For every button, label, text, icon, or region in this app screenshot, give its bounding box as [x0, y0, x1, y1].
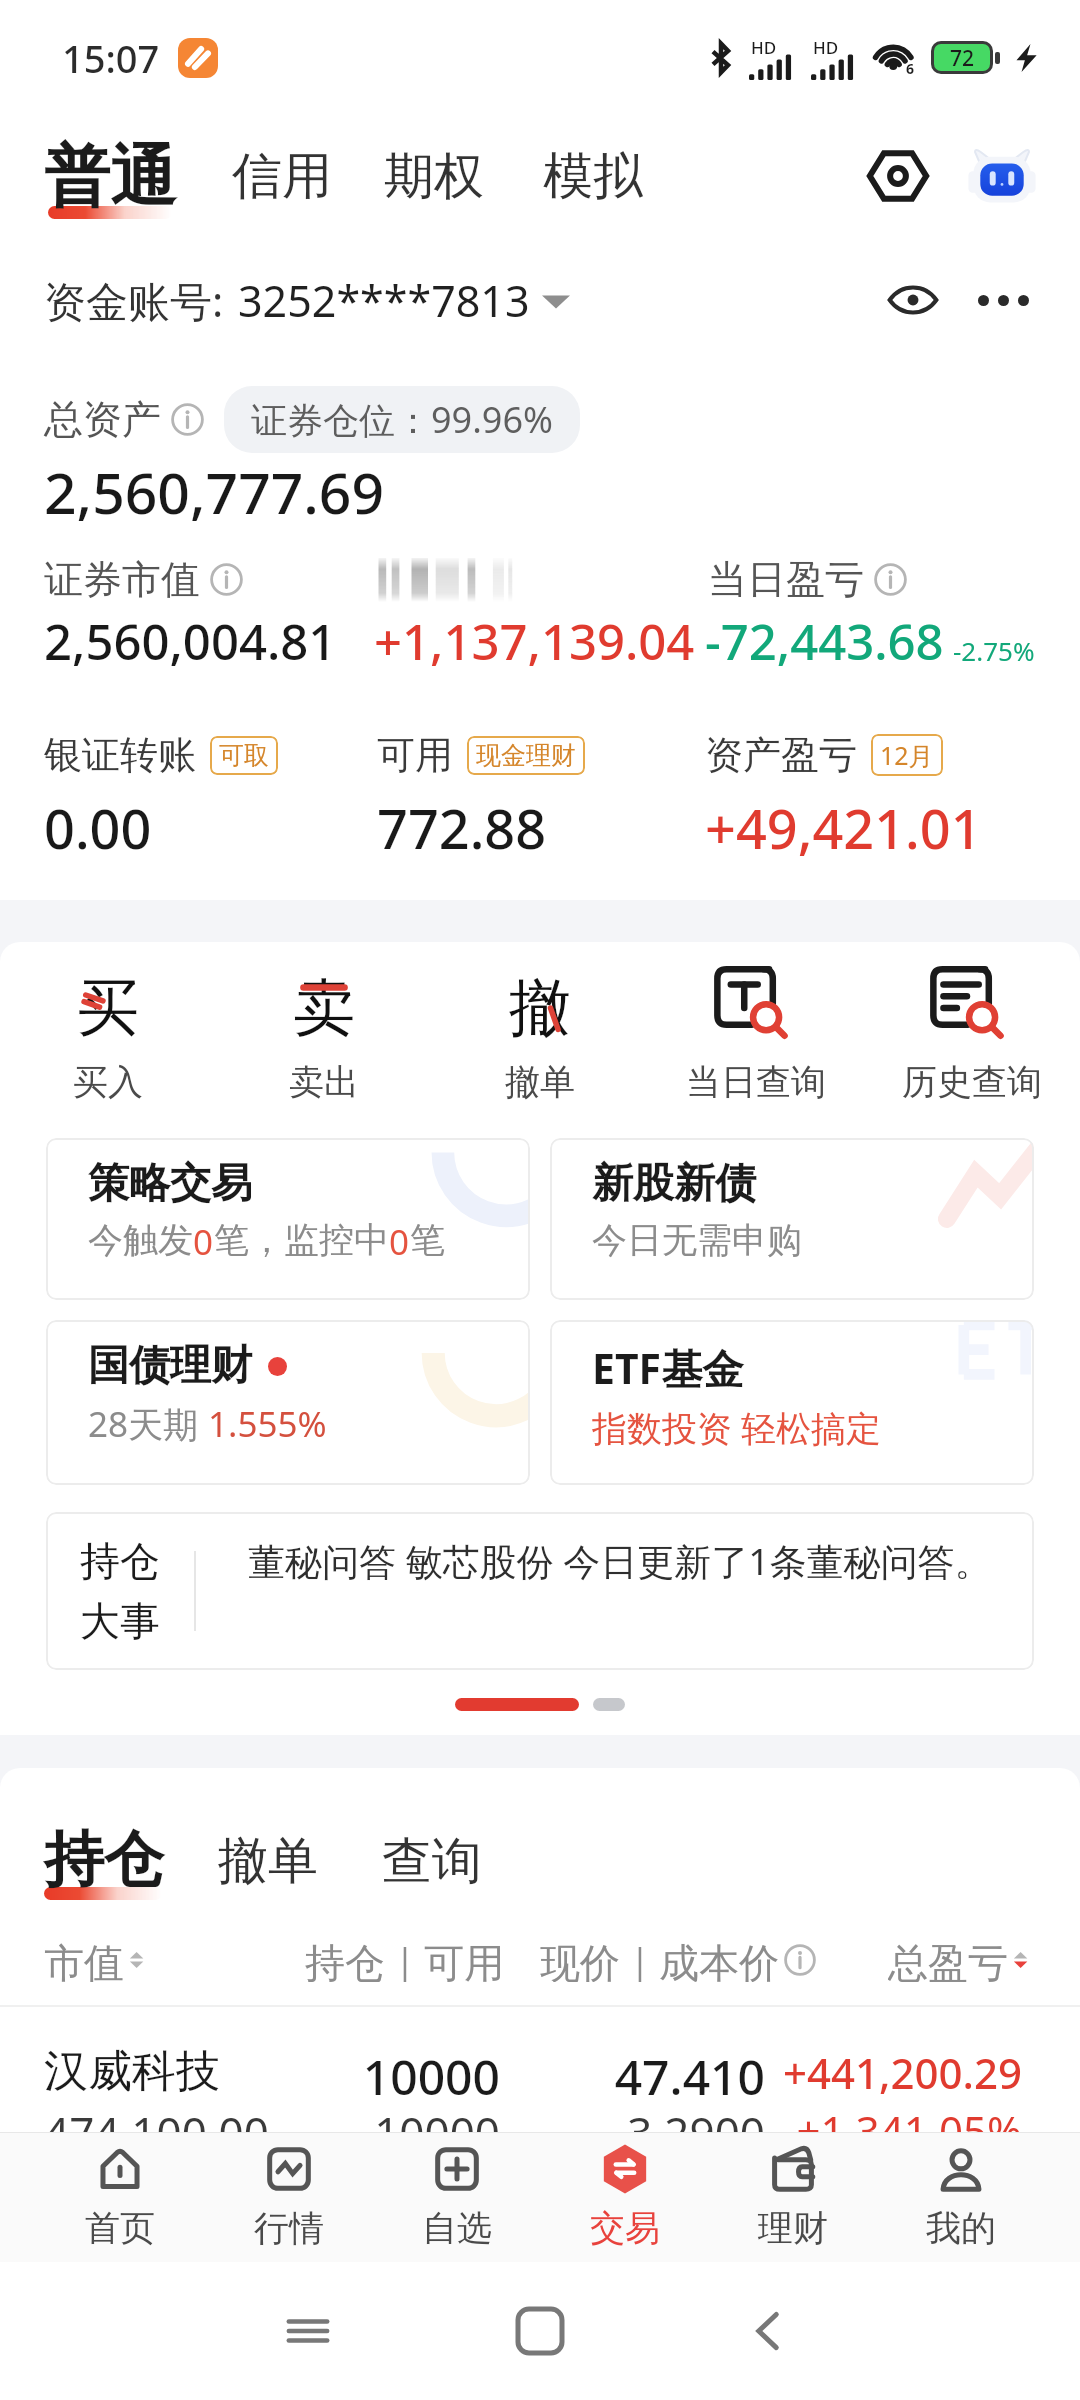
staticText: 持仓｜可用	[305, 1938, 505, 1982]
staticText: 证券仓位：99.96%	[251, 395, 553, 444]
staticText: 0	[193, 1218, 214, 1266]
button[interactable]: 买	[0, 958, 216, 1104]
staticText: 28天期	[88, 1400, 208, 1448]
staticText: -2.75%	[953, 633, 1035, 668]
staticText: 策略交易	[88, 1158, 252, 1210]
staticText: 现金理财	[476, 740, 576, 771]
staticText: 总资产	[44, 395, 161, 444]
staticText: +1,341.05%	[0, 2102, 1022, 2132]
staticText: +49,421.01	[705, 791, 982, 865]
staticText: 47.410	[0, 2044, 765, 2096]
staticText: 卖	[293, 969, 355, 1047]
staticText: 理财	[758, 2206, 828, 2250]
button[interactable]: Toggle balance visibility	[880, 267, 946, 333]
staticText: 新股新债	[592, 1158, 756, 1210]
staticText: 董秘问答 敏芯股份 今日更新了1条董秘问答。	[248, 1535, 992, 1586]
button[interactable]: 历史查询	[864, 958, 1080, 1104]
staticText: 持仓	[80, 1536, 160, 1586]
button[interactable]: 撤单	[218, 1824, 318, 1898]
staticText: 笔	[410, 1218, 445, 1262]
staticText: 卖出	[289, 1060, 359, 1104]
staticText: 772.88	[377, 791, 547, 865]
staticText: 撤	[509, 969, 571, 1047]
staticText: 模拟	[543, 145, 643, 208]
staticText: HD	[751, 36, 777, 59]
staticText: 总盈亏	[888, 1938, 1008, 1982]
button[interactable]: 首页	[35, 2132, 204, 2262]
staticText: 10000	[0, 2044, 500, 2096]
staticText: 指数投资 轻松搞定	[592, 1404, 882, 1452]
staticText: 银证转账	[44, 731, 196, 779]
staticText: 1.555%	[208, 1400, 327, 1448]
button[interactable]: 交易	[541, 2132, 709, 2262]
staticText: 交易	[590, 2206, 660, 2250]
staticText: 期权	[384, 145, 484, 208]
staticText: 汉威科技	[44, 2044, 220, 2096]
staticText: 今日无需申购	[592, 1218, 802, 1262]
button[interactable]: 行情	[204, 2132, 373, 2262]
staticText: 2,560,777.69	[44, 453, 385, 531]
button[interactable]: 持仓	[44, 1816, 164, 1898]
button[interactable]: Back	[708, 2262, 828, 2400]
button[interactable]: 当日查询	[648, 958, 864, 1104]
button[interactable]: 期权	[384, 126, 484, 226]
button[interactable]: 模拟	[543, 126, 643, 226]
staticText: 国债理财	[88, 1340, 252, 1392]
button[interactable]: 策略交易	[46, 1138, 530, 1300]
staticText: 我的	[926, 2206, 996, 2250]
staticText: 历史查询	[902, 1060, 1042, 1104]
staticText: 3252****7813	[238, 271, 530, 330]
button[interactable]: Settings	[858, 136, 938, 216]
button[interactable]: 理财	[709, 2132, 877, 2262]
staticText: 今触发	[88, 1218, 193, 1262]
staticText: HD	[813, 36, 839, 59]
button[interactable]: 新股新债	[550, 1138, 1034, 1300]
staticText: -72,443.68	[705, 608, 944, 675]
staticText: 信用	[232, 145, 332, 208]
staticText: 10000	[0, 2102, 500, 2132]
staticText: 72	[950, 44, 975, 71]
staticText: 笔，监控中	[214, 1218, 389, 1262]
button[interactable]: 查询	[382, 1824, 482, 1898]
staticText: 当日查询	[686, 1060, 826, 1104]
staticText: 现价｜成本价	[540, 1938, 780, 1982]
button[interactable]: Home	[480, 2262, 600, 2400]
button[interactable]: 持仓	[46, 1512, 1034, 1670]
staticText: 当日盈亏	[708, 555, 864, 604]
staticText: 普通	[44, 135, 176, 218]
staticText: 撤单	[218, 1830, 318, 1893]
button[interactable]: 国债理财	[46, 1320, 530, 1485]
button[interactable]: 自选	[373, 2132, 541, 2262]
button[interactable]: 普通	[44, 126, 176, 226]
staticText: 行情	[254, 2206, 324, 2250]
staticText: 资产盈亏	[705, 731, 857, 779]
staticText: 0.00	[44, 791, 152, 865]
staticText: 证券市值	[44, 555, 200, 604]
staticText: 15:07	[62, 32, 160, 84]
button[interactable]: 信用	[232, 126, 332, 226]
staticText: 查询	[382, 1830, 482, 1893]
staticText: 可取	[219, 740, 269, 771]
button[interactable]: 证券仓位：99.96%	[224, 386, 580, 453]
button[interactable]: 撤	[432, 958, 648, 1104]
staticText: 0	[389, 1218, 410, 1266]
staticText: 买入	[73, 1060, 143, 1104]
staticText: 2,560,004.81	[44, 608, 337, 675]
staticText: 买	[77, 969, 139, 1047]
button[interactable]: Recent apps	[248, 2262, 368, 2400]
button[interactable]: 我的	[877, 2132, 1045, 2262]
button[interactable]: AI assistant	[960, 134, 1044, 218]
staticText: +1,137,139.04	[374, 608, 695, 675]
staticText: 474,100.00	[44, 2102, 269, 2132]
staticText: 大事	[80, 1596, 160, 1646]
staticText: 6	[906, 59, 915, 78]
button[interactable]: 卖	[216, 958, 432, 1104]
staticText: 市值	[44, 1938, 124, 1982]
button[interactable]: ETF基金	[550, 1320, 1034, 1485]
staticText: +441,200.29	[0, 2044, 1022, 2096]
staticText: 首页	[85, 2206, 155, 2250]
staticText: 资金账号:	[44, 272, 224, 329]
button[interactable]: More options	[970, 267, 1036, 333]
staticText: 撤单	[505, 1060, 575, 1104]
staticText: 自选	[422, 2206, 492, 2250]
